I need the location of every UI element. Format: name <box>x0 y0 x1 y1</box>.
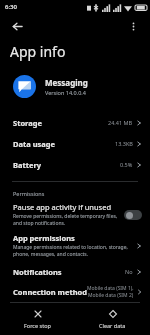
staticText: Pause app activity if unused <box>13 202 112 212</box>
staticText: Version 14.0.0.4 <box>45 89 86 96</box>
button[interactable]: App permissions <box>0 230 150 261</box>
button[interactable]: Battery <box>0 154 150 175</box>
button[interactable]: Connection method <box>0 282 150 302</box>
button[interactable]: Pause app activity toggle <box>124 210 142 220</box>
button[interactable]: Storage <box>0 112 150 133</box>
button[interactable]: Clear data <box>75 303 150 335</box>
staticText: Clear data <box>99 322 126 329</box>
staticText: Mobile data (SIM 1), <box>87 285 134 292</box>
staticText: Battery <box>13 160 42 170</box>
button[interactable]: Force stop <box>0 303 75 335</box>
staticText: Data usage <box>13 139 56 149</box>
button[interactable]: Messaging <box>0 71 150 102</box>
staticText: 6:30 <box>5 3 17 11</box>
staticText: Messaging <box>45 77 88 88</box>
staticText: Manage permissions related to location, … <box>13 244 133 258</box>
staticText: No <box>125 268 133 275</box>
staticText: Notifications <box>13 267 62 277</box>
staticText: Storage <box>13 118 42 128</box>
staticText: 13.3KB <box>115 140 133 147</box>
button[interactable]: Pause app activity if unused <box>0 200 150 230</box>
staticText: 24.41 MB <box>108 119 133 126</box>
staticText: Force stop <box>24 322 51 329</box>
button[interactable]: Data usage <box>0 133 150 154</box>
staticText: App permissions <box>13 233 75 243</box>
button[interactable]: Back <box>6 15 28 37</box>
button[interactable]: More options <box>122 15 144 37</box>
staticText: Permissions <box>13 190 45 197</box>
button[interactable]: Notifications <box>0 261 150 282</box>
staticText: App info <box>10 42 66 61</box>
staticText: Mobile data (SIM 2) <box>88 292 134 299</box>
staticText: Remove permissions, delete temporary fil… <box>13 213 118 227</box>
staticText: 0.5% <box>120 161 133 168</box>
staticText: Connection method <box>13 287 87 297</box>
